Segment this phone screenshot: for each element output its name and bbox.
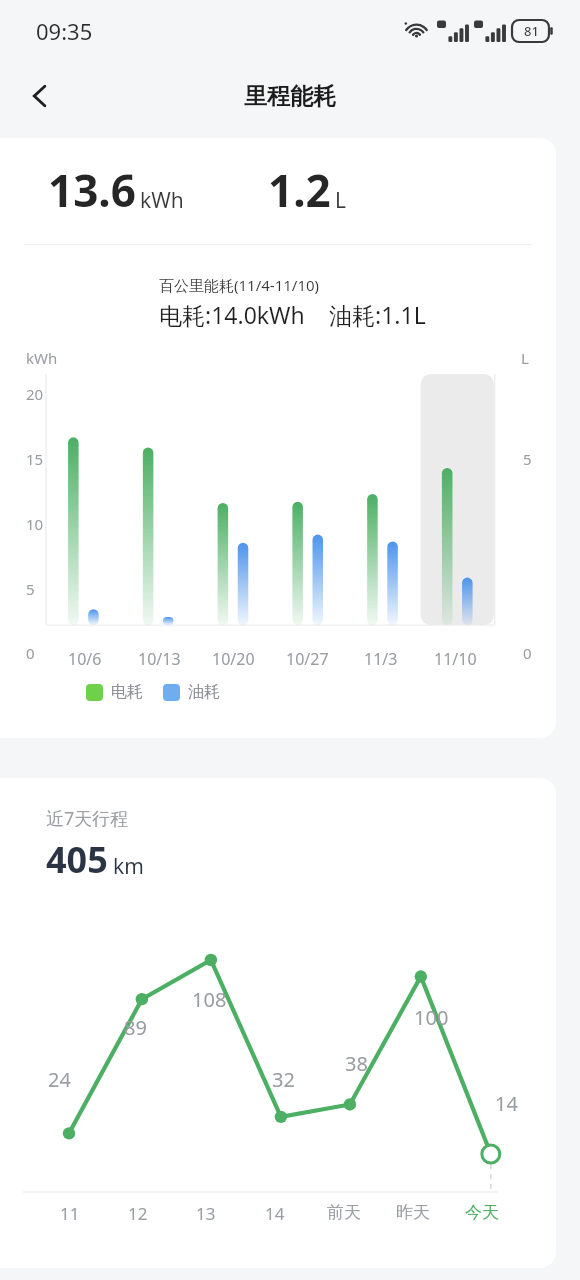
- staticText: 09:35: [36, 16, 93, 46]
- staticText: 昨天: [396, 1202, 430, 1223]
- button[interactable]: 近7天行程: [0, 778, 556, 1268]
- staticText: 20: [26, 384, 44, 404]
- staticText: km: [113, 852, 144, 881]
- staticText: 10: [26, 514, 44, 534]
- staticText: kWh: [140, 186, 184, 215]
- staticText: 0: [26, 643, 35, 663]
- staticText: 13: [196, 1202, 216, 1225]
- staticText: 10/20: [212, 648, 255, 670]
- staticText: 11/3: [364, 648, 398, 670]
- staticText: 10/13: [138, 648, 181, 670]
- staticText: 电耗: [111, 682, 143, 702]
- staticText: 15: [26, 449, 44, 469]
- staticText: L: [521, 348, 529, 368]
- button[interactable]: Back: [14, 70, 66, 122]
- staticText: kWh: [26, 348, 58, 368]
- staticText: 11: [60, 1202, 80, 1225]
- staticText: 14: [265, 1202, 285, 1225]
- staticText: 百公里能耗(11/4-11/10): [159, 275, 320, 295]
- staticText: 12: [128, 1202, 148, 1225]
- staticText: 32: [272, 1066, 295, 1093]
- staticText: 1.2: [268, 160, 331, 220]
- staticText: 10/6: [68, 648, 102, 670]
- button[interactable]: 13.6: [0, 138, 556, 738]
- staticText: 电耗:14.0kWh: [159, 299, 305, 330]
- staticText: 89: [124, 1014, 147, 1041]
- staticText: 108: [192, 986, 227, 1013]
- staticText: 5: [523, 449, 532, 469]
- staticText: 11/10: [434, 648, 477, 670]
- staticText: 油耗: [188, 682, 220, 702]
- staticText: 里程能耗: [244, 82, 336, 111]
- staticText: 405: [46, 835, 108, 884]
- staticText: 油耗:1.1L: [329, 299, 426, 330]
- staticText: 24: [48, 1066, 71, 1093]
- staticText: 100: [414, 1004, 449, 1031]
- staticText: 5: [26, 579, 35, 599]
- staticText: 今天: [465, 1202, 499, 1223]
- staticText: 81: [524, 22, 539, 40]
- staticText: 0: [523, 643, 532, 663]
- staticText: 14: [495, 1090, 518, 1117]
- staticText: 38: [345, 1050, 368, 1077]
- staticText: 10/27: [286, 648, 329, 670]
- staticText: 近7天行程: [46, 806, 129, 831]
- staticText: 前天: [327, 1202, 361, 1223]
- staticText: 13.6: [48, 160, 136, 220]
- staticText: L: [335, 186, 347, 215]
